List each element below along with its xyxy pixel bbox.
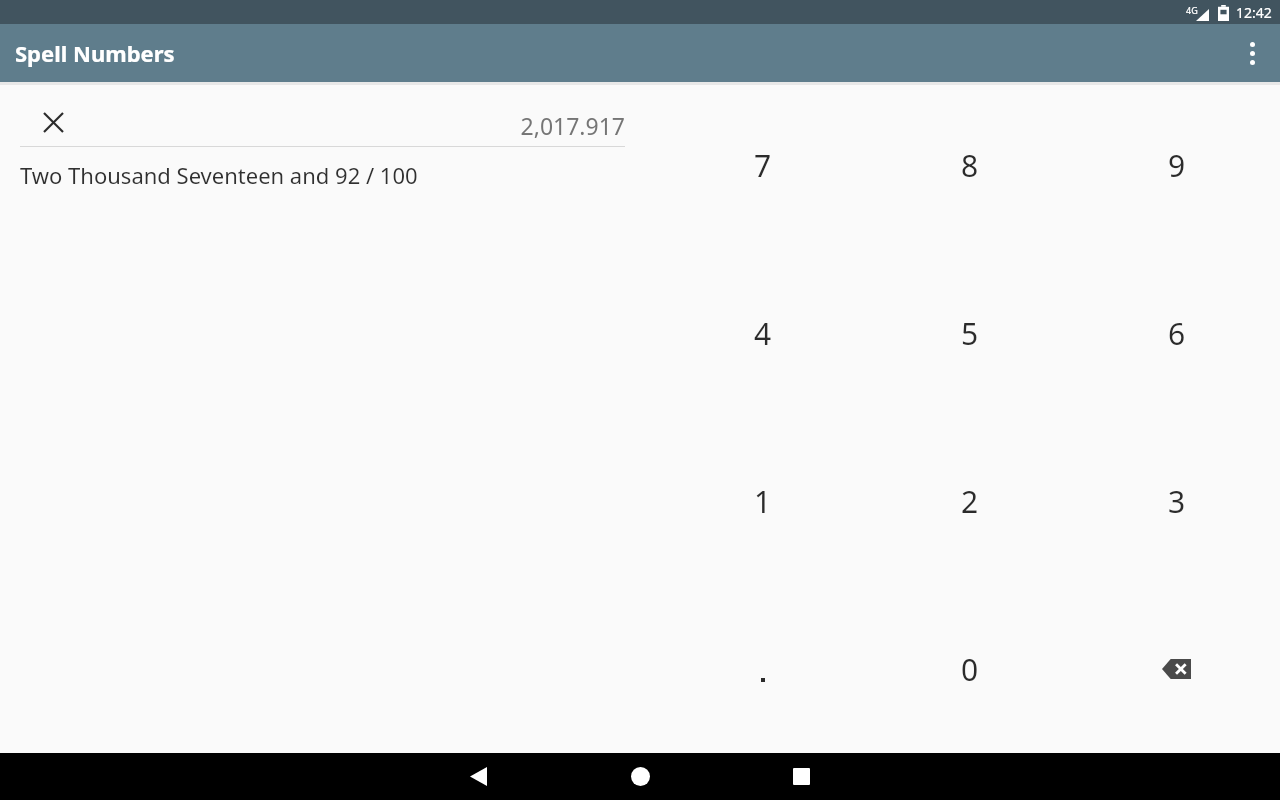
staticText: 8 — [961, 145, 979, 186]
staticText: 7 — [754, 145, 772, 186]
button[interactable]: Decimal point — [660, 585, 866, 753]
staticText: 4 — [754, 313, 772, 354]
staticText: 12:42 — [1236, 3, 1272, 22]
staticText: Spell Numbers — [15, 38, 175, 68]
button[interactable]: Clear — [29, 98, 77, 146]
button[interactable]: 3 — [1073, 417, 1280, 585]
button[interactable]: Back — [454, 753, 502, 800]
button[interactable]: 4 — [660, 249, 866, 417]
staticText: 6 — [1168, 313, 1186, 354]
button[interactable]: 0 — [866, 585, 1073, 753]
staticText: 2,017.917 — [0, 110, 625, 141]
staticText: 1 — [754, 481, 772, 522]
staticText: Two Thousand Seventeen and 92 / 100 — [20, 160, 418, 190]
staticText: 0 — [961, 649, 979, 690]
button[interactable]: 6 — [1073, 249, 1280, 417]
button[interactable]: 5 — [866, 249, 1073, 417]
staticText: 3 — [1168, 481, 1186, 522]
button[interactable]: 1 — [660, 417, 866, 585]
button[interactable]: Recent apps — [777, 753, 825, 800]
button[interactable]: Home — [616, 753, 664, 800]
staticText: 2 — [961, 481, 979, 522]
staticText: 5 — [961, 313, 979, 354]
button[interactable]: 9 — [1073, 82, 1280, 249]
staticText: 4G — [1186, 4, 1198, 16]
staticText: 9 — [1168, 145, 1186, 186]
button[interactable]: More options — [1224, 25, 1280, 81]
button[interactable]: 7 — [660, 82, 866, 249]
button[interactable]: 8 — [866, 82, 1073, 249]
button[interactable]: 2 — [866, 417, 1073, 585]
button[interactable]: Backspace — [1073, 585, 1280, 753]
